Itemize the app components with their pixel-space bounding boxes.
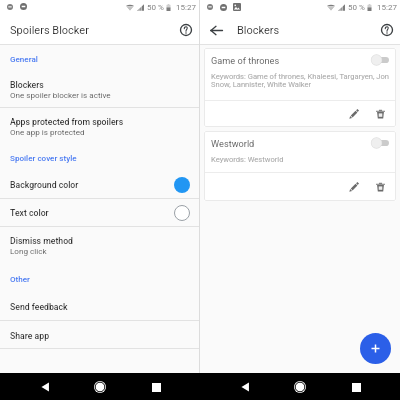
staticText: Text color [10,208,174,218]
button[interactable]: Text color [0,199,199,226]
staticText: One app is protected [10,127,85,136]
staticText: Keywords: Game of thrones, Khaleesi, Tar… [211,72,390,89]
staticText: Game of thrones [211,55,371,66]
staticText: Long click [10,246,47,255]
button[interactable]: Enable blocker [371,137,389,149]
staticText: Westworld [211,138,371,149]
button[interactable]: Home [289,376,311,398]
staticText: Background color [10,180,174,190]
button[interactable]: Back [234,376,256,398]
staticText: Blockers [10,80,44,90]
staticText: Apps protected from spoilers [10,117,124,127]
staticText: Send feedback [10,302,68,312]
button[interactable]: Recent apps [345,376,367,398]
staticText: Spoilers Blocker [10,24,89,37]
button[interactable]: Edit [344,177,364,197]
button[interactable]: Back [204,18,228,42]
button[interactable]: Blockers [0,69,199,107]
staticText: 15:27 [176,3,196,12]
staticText: General [10,54,38,63]
button[interactable]: Delete [370,104,390,124]
staticText: Dismiss method [10,236,74,246]
staticText: Keywords: Westworld [211,155,284,164]
staticText: One spoiler blocker is active [10,90,111,99]
staticText: Share app [10,331,50,341]
button[interactable]: Back [34,376,56,398]
button[interactable]: Westworld [204,131,396,201]
button[interactable]: Enable blocker [371,54,389,66]
button[interactable]: Send feedback [0,292,199,320]
button[interactable]: Apps protected from spoilers [0,108,199,146]
staticText: Spoiler cover style [10,153,77,162]
button[interactable]: Edit [344,104,364,124]
staticText: 15:27 [377,3,397,12]
staticText: 50 % [147,3,164,12]
button[interactable]: Delete [370,177,390,197]
staticText: Blockers [237,24,280,37]
button[interactable]: Share app [0,321,199,348]
button[interactable]: Home [89,376,111,398]
button[interactable]: Dismiss method [0,227,199,265]
button[interactable]: Help [174,18,198,42]
staticText: Other [10,274,30,283]
button[interactable]: Recent apps [145,376,167,398]
button[interactable]: Help [375,18,399,42]
button[interactable]: Game of thrones [204,48,396,127]
button[interactable]: Background color [0,171,199,198]
staticText: 50 % [348,3,365,12]
button[interactable]: Add blocker [360,333,391,364]
